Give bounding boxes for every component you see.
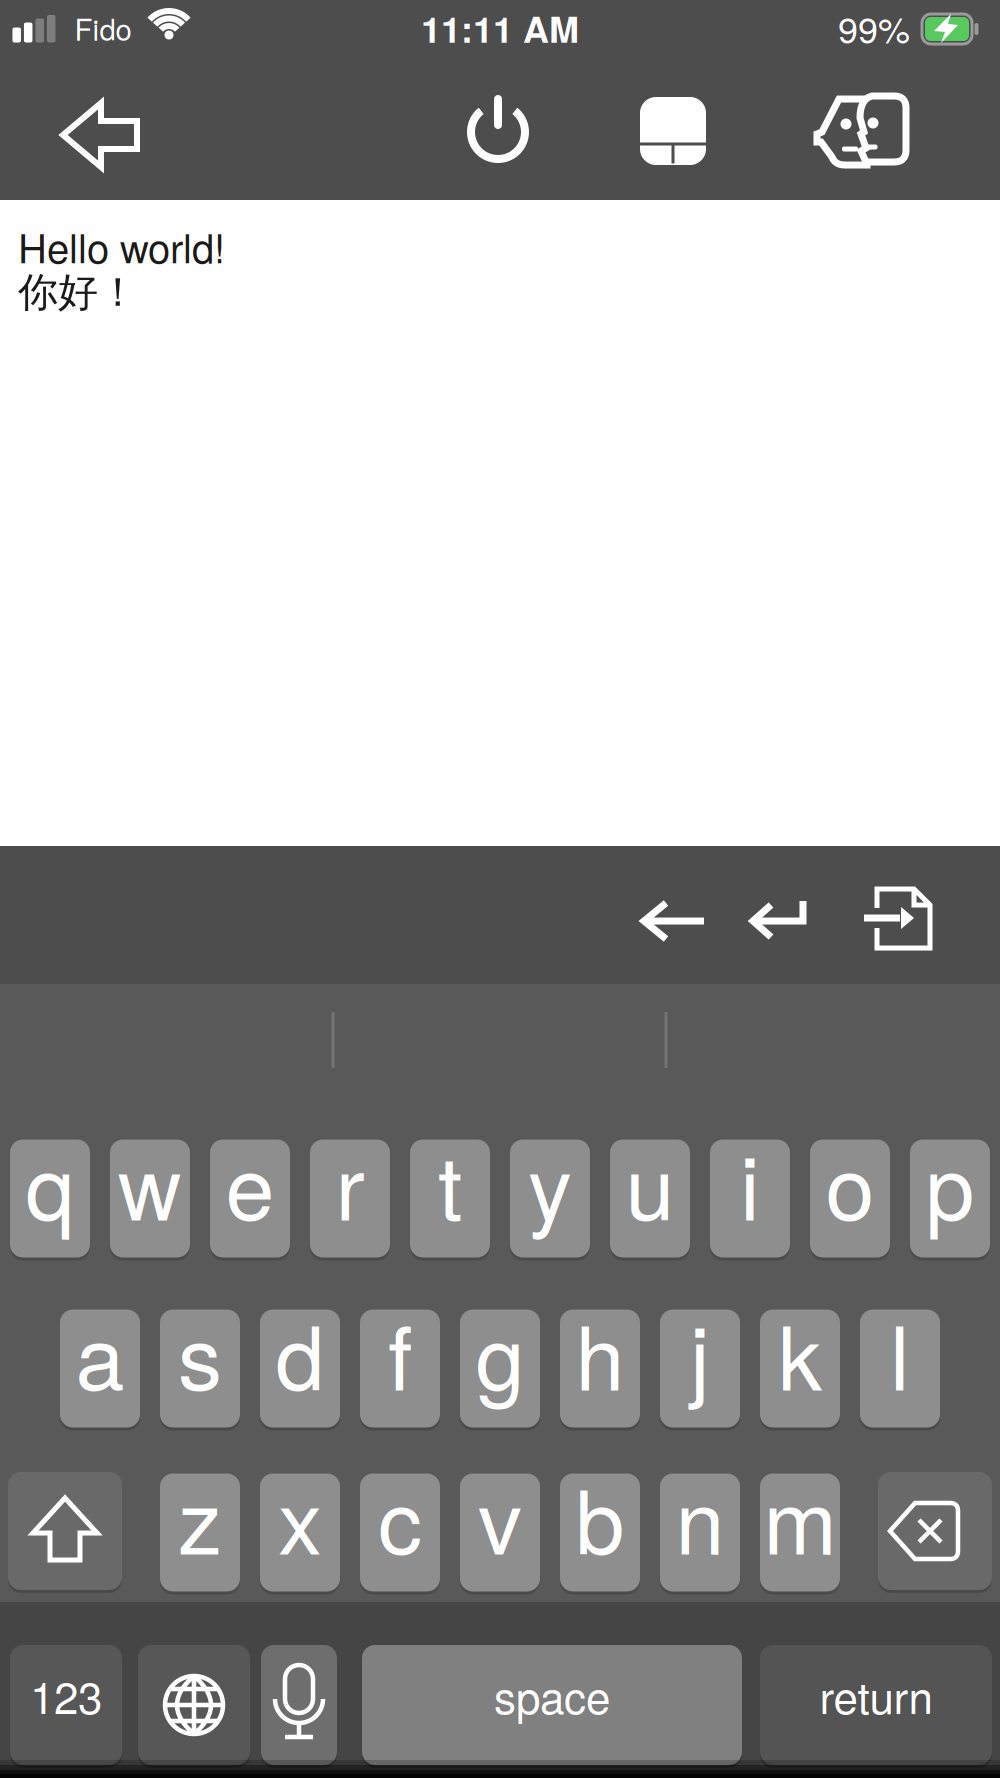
button[interactable]: n xyxy=(660,1472,740,1593)
button[interactable]: g xyxy=(460,1308,540,1429)
button[interactable]: p xyxy=(910,1138,990,1259)
staticText: Fido xyxy=(74,7,131,48)
staticText: t xyxy=(438,1121,462,1244)
staticText: c xyxy=(378,1455,422,1578)
button[interactable] xyxy=(138,1643,250,1766)
staticText: a xyxy=(75,1291,124,1414)
staticText: 11:11 AM xyxy=(421,3,579,53)
staticText: l xyxy=(890,1291,910,1414)
staticText: o xyxy=(825,1121,874,1244)
staticText: u xyxy=(625,1121,674,1244)
button[interactable]: m xyxy=(760,1472,840,1593)
staticText: n xyxy=(675,1455,724,1578)
staticText: 123 xyxy=(30,1664,102,1726)
button[interactable]: i xyxy=(710,1138,790,1259)
staticText: q xyxy=(25,1121,74,1244)
staticText: w xyxy=(118,1121,182,1244)
staticText: space xyxy=(494,1664,610,1726)
button[interactable]: d xyxy=(260,1308,340,1429)
staticText: i xyxy=(740,1121,760,1244)
button[interactable]: r xyxy=(310,1138,390,1259)
button[interactable]: space xyxy=(362,1643,742,1766)
button[interactable]: w xyxy=(110,1138,190,1259)
staticText: e xyxy=(225,1121,274,1244)
button[interactable]: t xyxy=(410,1138,490,1259)
button[interactable]: c xyxy=(360,1472,440,1593)
staticText: j xyxy=(690,1291,710,1414)
staticText: return xyxy=(819,1664,932,1726)
button[interactable] xyxy=(60,101,140,169)
staticText: k xyxy=(778,1291,822,1414)
button[interactable]: z xyxy=(160,1472,240,1593)
button[interactable]: return xyxy=(760,1643,992,1766)
button[interactable] xyxy=(878,1470,992,1591)
button[interactable]: f xyxy=(360,1308,440,1429)
staticText: 99% xyxy=(838,3,910,53)
button[interactable] xyxy=(463,95,533,165)
button[interactable]: a xyxy=(60,1308,140,1429)
staticText: p xyxy=(925,1121,974,1244)
staticText: y xyxy=(528,1121,572,1244)
button[interactable]: s xyxy=(160,1308,240,1429)
button[interactable]: k xyxy=(760,1308,840,1429)
button[interactable] xyxy=(747,899,811,943)
button[interactable] xyxy=(640,97,706,165)
staticText: b xyxy=(575,1455,624,1578)
button[interactable]: h xyxy=(560,1308,640,1429)
button[interactable] xyxy=(8,1470,122,1591)
button[interactable] xyxy=(862,884,936,954)
button[interactable]: v xyxy=(460,1472,540,1593)
button[interactable]: y xyxy=(510,1138,590,1259)
staticText: Hello world! xyxy=(18,218,225,274)
button[interactable] xyxy=(639,899,709,943)
staticText: z xyxy=(178,1455,222,1578)
staticText: g xyxy=(475,1291,524,1414)
staticText: s xyxy=(178,1291,222,1414)
button[interactable] xyxy=(815,91,915,173)
staticText: d xyxy=(275,1291,324,1414)
button[interactable]: x xyxy=(260,1472,340,1593)
button[interactable]: o xyxy=(810,1138,890,1259)
button[interactable]: l xyxy=(860,1308,940,1429)
staticText: v xyxy=(478,1455,522,1578)
staticText: r xyxy=(335,1121,364,1244)
button[interactable]: j xyxy=(660,1308,740,1429)
staticText: x xyxy=(278,1455,322,1578)
staticText: m xyxy=(763,1455,836,1578)
staticText: 你好！ xyxy=(18,268,138,317)
staticText: h xyxy=(575,1291,624,1414)
button[interactable]: 123 xyxy=(10,1643,122,1766)
button[interactable] xyxy=(261,1643,337,1766)
button[interactable]: u xyxy=(610,1138,690,1259)
button[interactable]: q xyxy=(10,1138,90,1259)
button[interactable]: e xyxy=(210,1138,290,1259)
staticText: f xyxy=(388,1291,412,1414)
button[interactable]: b xyxy=(560,1472,640,1593)
